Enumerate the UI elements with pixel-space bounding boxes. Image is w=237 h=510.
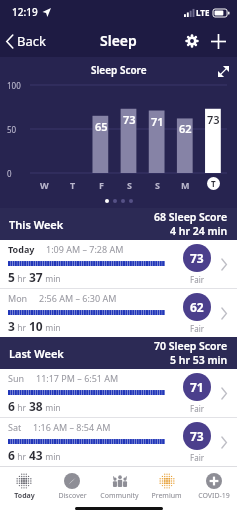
- staticText: 71: [151, 114, 164, 129]
- staticText: S: [155, 179, 160, 191]
- staticText: 43: [29, 447, 43, 463]
- staticText: LTE: [196, 7, 210, 18]
- staticText: Premium: [151, 491, 182, 501]
- staticText: Mon: [8, 292, 28, 304]
- staticText: Back: [17, 32, 46, 50]
- staticText: Sleep: [100, 31, 137, 50]
- staticText: T: [211, 178, 216, 189]
- button[interactable]: Back: [0, 28, 52, 54]
- staticText: 6: [8, 447, 15, 463]
- staticText: 73: [190, 428, 204, 444]
- staticText: 5: [8, 269, 15, 285]
- staticText: min: [43, 273, 61, 285]
- staticText: 0: [7, 168, 12, 179]
- staticText: hr: [15, 322, 29, 334]
- staticText: 12:19: [12, 5, 38, 19]
- button[interactable]: Settings: [179, 28, 205, 54]
- staticText: 50: [7, 124, 17, 135]
- staticText: Fair: [190, 403, 205, 414]
- staticText: 38: [29, 398, 43, 414]
- staticText: Sun: [8, 372, 25, 384]
- staticText: 1:09 AM – 7:28 AM: [46, 243, 124, 255]
- staticText: S: [127, 179, 132, 191]
- staticText: Fair: [190, 274, 205, 285]
- staticText: W: [40, 179, 49, 191]
- button[interactable]: Premium: [143, 467, 190, 507]
- staticText: 1:16 AM – 8:54 AM: [33, 421, 111, 433]
- staticText: 3: [8, 318, 15, 334]
- staticText: 73: [190, 250, 204, 266]
- staticText: Sleep Score: [91, 63, 147, 77]
- staticText: Last Week: [9, 346, 64, 361]
- staticText: Fair: [190, 323, 205, 334]
- staticText: Fair: [190, 452, 205, 463]
- staticText: 73: [123, 112, 136, 127]
- staticText: 71: [190, 379, 204, 395]
- staticText: min: [43, 402, 61, 414]
- button[interactable]: Today: [0, 467, 48, 507]
- button[interactable]: Mon: [0, 289, 237, 337]
- staticText: F: [99, 179, 104, 191]
- button[interactable]: COVID-19: [190, 467, 237, 507]
- staticText: 4 hr 24 min: [170, 224, 228, 238]
- staticText: 70 Sleep Score: [154, 339, 228, 353]
- staticText: hr: [15, 451, 29, 463]
- staticText: 11:17 PM – 6:51 AM: [36, 372, 119, 384]
- staticText: 62: [190, 299, 204, 315]
- staticText: 5 hr 53 min: [170, 353, 228, 367]
- button[interactable]: Expand chart: [213, 61, 233, 81]
- staticText: 73: [207, 112, 220, 127]
- staticText: Today: [8, 243, 35, 255]
- staticText: 2:56 AM – 6:30 AM: [39, 292, 117, 304]
- staticText: Sat: [8, 421, 22, 433]
- staticText: COVID-19: [198, 491, 230, 501]
- staticText: 65: [95, 119, 108, 134]
- staticText: min: [43, 322, 61, 334]
- staticText: 62: [179, 121, 192, 136]
- staticText: This Week: [9, 217, 64, 232]
- staticText: min: [43, 451, 61, 463]
- staticText: M: [181, 179, 190, 191]
- button[interactable]: Community: [96, 467, 143, 507]
- staticText: Today: [14, 491, 35, 501]
- button[interactable]: Add: [205, 28, 231, 54]
- staticText: 68 Sleep Score: [154, 210, 228, 224]
- button[interactable]: Discover: [48, 467, 96, 507]
- button[interactable]: Sun: [0, 369, 237, 417]
- staticText: hr: [15, 402, 29, 414]
- staticText: Community: [100, 491, 139, 501]
- staticText: 100: [7, 80, 21, 91]
- staticText: hr: [15, 273, 29, 285]
- staticText: 6: [8, 398, 15, 414]
- staticText: 37: [29, 269, 43, 285]
- staticText: T: [70, 179, 76, 191]
- button[interactable]: Today: [0, 240, 237, 288]
- button[interactable]: Sat: [0, 418, 237, 466]
- staticText: Discover: [58, 491, 87, 501]
- staticText: 10: [29, 318, 43, 334]
